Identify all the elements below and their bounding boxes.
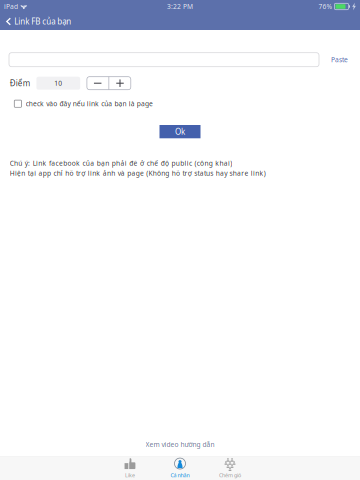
button[interactable]: check vào đây nếu link của bạn là page [14, 99, 158, 108]
button[interactable]: Decrease [87, 77, 108, 90]
staticText: Cá nhân [170, 472, 189, 479]
staticText: 3:22 PM [167, 2, 193, 11]
staticText: Link FB của bạn [14, 16, 71, 27]
button[interactable]: Cá nhân [158, 456, 202, 480]
staticText: Like [125, 472, 135, 479]
staticText: Ok [175, 126, 185, 137]
button[interactable]: Chém gió [208, 456, 252, 480]
button[interactable]: Paste [319, 53, 351, 67]
staticText: Hiện tại app chỉ hỗ trợ link ảnh và page… [10, 169, 266, 178]
staticText: 76% [318, 2, 332, 11]
button[interactable]: Link FB của bạn [0, 13, 77, 30]
staticText: check vào đây nếu link của bạn là page [26, 99, 153, 108]
staticText: Xem video hướng dẫn [145, 440, 214, 449]
staticText: iPad [4, 2, 18, 11]
staticText: 10 [54, 79, 62, 88]
button[interactable]: Increase [109, 77, 131, 90]
staticText: Chú ý: Link facebook của bạn phải để ở c… [10, 159, 232, 168]
button[interactable]: Xem video hướng dẫn [139, 438, 220, 450]
button[interactable]: Ok [159, 125, 200, 138]
button[interactable]: Like [108, 456, 152, 480]
staticText: Chém gió [219, 472, 241, 479]
staticText: Điểm [10, 78, 30, 88]
staticText: Paste [331, 55, 348, 64]
